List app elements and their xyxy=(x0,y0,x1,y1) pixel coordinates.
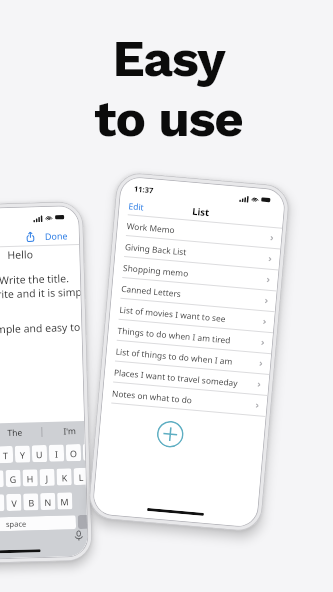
button[interactable]: List of things to do when I am stress xyxy=(106,340,271,374)
staticText: List of things to do when I am stress xyxy=(115,346,257,369)
button[interactable]: V xyxy=(6,494,22,511)
staticText: Shopping memo xyxy=(123,262,264,285)
button[interactable]: List of movies I want to see xyxy=(110,298,275,332)
staticText: space xyxy=(6,518,27,529)
button[interactable]: Work Memo xyxy=(117,214,282,249)
staticText: Easy xyxy=(112,29,225,89)
staticText: O xyxy=(70,447,78,459)
staticText: Work Memo xyxy=(126,220,268,243)
button[interactable]: H xyxy=(22,469,38,487)
staticText: List xyxy=(192,205,211,219)
button[interactable]: I'm xyxy=(42,421,85,441)
staticText: N xyxy=(44,496,51,508)
staticText: List of movies I want to see xyxy=(119,304,260,327)
staticText: Notes on what to do xyxy=(112,387,253,411)
staticText: 11:37 xyxy=(134,184,154,195)
button[interactable]: I xyxy=(49,444,64,462)
staticText: Write the title. xyxy=(0,271,69,287)
staticText: Things to do when I am tired xyxy=(117,325,258,348)
button[interactable]: O xyxy=(66,444,81,461)
button[interactable]: Giving Back List xyxy=(115,235,280,269)
button[interactable]: space xyxy=(0,515,76,532)
button[interactable]: C xyxy=(0,494,5,511)
staticText: Giving Back List xyxy=(124,241,266,264)
staticText: Places I want to travel someday xyxy=(113,367,255,390)
staticText: Canned Letters xyxy=(121,283,262,306)
staticText: U xyxy=(36,448,43,460)
staticText: T xyxy=(3,449,9,461)
button[interactable]: Places I want to travel someday xyxy=(104,361,269,395)
staticText: Hello xyxy=(7,247,34,262)
button[interactable]: Edit xyxy=(128,200,145,213)
button[interactable]: Done xyxy=(45,229,68,242)
button[interactable]: Add note xyxy=(156,420,185,449)
staticText: H xyxy=(26,472,34,484)
staticText: K xyxy=(61,471,68,484)
button[interactable]: L xyxy=(73,468,86,485)
staticText: The xyxy=(7,427,22,439)
button[interactable]: Things to do when I am tired xyxy=(108,319,273,353)
staticText: I'm xyxy=(63,425,76,437)
staticText: V xyxy=(11,497,17,509)
button[interactable]: The xyxy=(0,422,42,443)
button[interactable]: Notes on what to do xyxy=(102,382,267,416)
staticText: L xyxy=(78,471,84,483)
staticText: Y xyxy=(20,448,26,461)
staticText: Write and it is simple to xyxy=(0,285,81,301)
button[interactable]: T xyxy=(0,446,13,463)
button[interactable]: N xyxy=(40,493,56,510)
button[interactable]: B xyxy=(23,493,39,511)
button[interactable]: Shopping memo xyxy=(113,256,278,290)
staticText: G xyxy=(9,473,17,485)
button[interactable]: Canned Letters xyxy=(111,277,277,311)
button[interactable]: Dictation xyxy=(73,530,84,541)
staticText: J xyxy=(45,472,49,484)
button[interactable]: K xyxy=(56,468,72,486)
button[interactable]: J xyxy=(39,469,55,486)
staticText: B xyxy=(28,496,34,508)
button[interactable]: U xyxy=(32,445,47,462)
staticText: M xyxy=(60,495,69,507)
button[interactable]: M xyxy=(57,492,73,510)
button[interactable]: F xyxy=(0,470,4,487)
staticText: I xyxy=(55,448,59,460)
button[interactable]: Y xyxy=(15,445,30,463)
button[interactable]: P xyxy=(83,444,85,461)
button[interactable]: Share xyxy=(25,231,36,242)
staticText: Simple and easy to use. xyxy=(0,320,82,336)
staticText: to use xyxy=(94,89,243,149)
button[interactable]: Return xyxy=(78,515,87,529)
button[interactable]: G xyxy=(5,470,21,487)
